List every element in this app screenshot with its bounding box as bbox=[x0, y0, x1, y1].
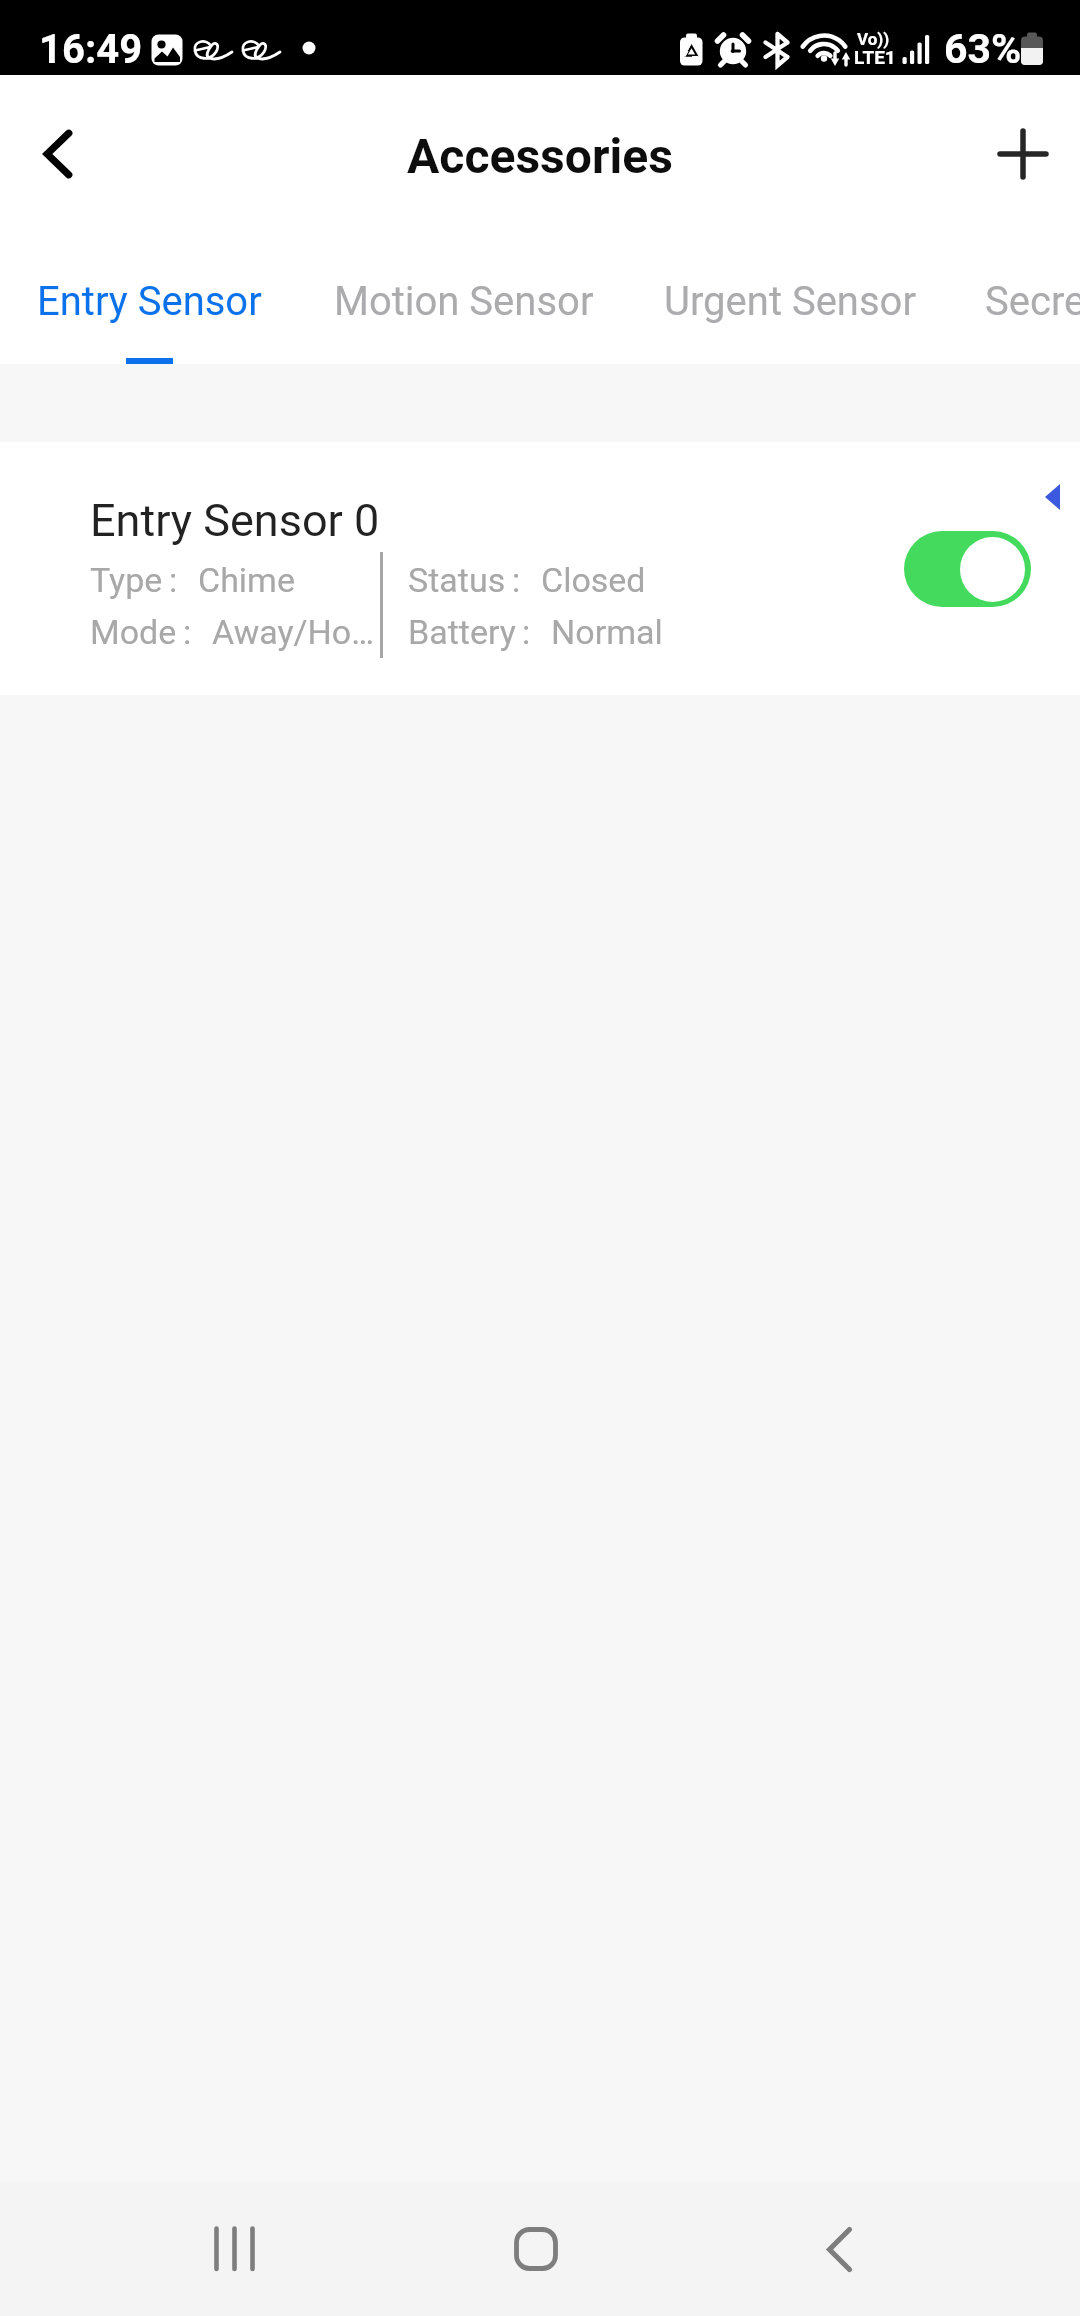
button[interactable]: Secret Sensor bbox=[944, 228, 1080, 364]
staticText: Normal bbox=[551, 612, 663, 652]
staticText: Chime bbox=[198, 560, 295, 600]
staticText: Entry Sensor 0 bbox=[90, 494, 380, 547]
staticText: Mode bbox=[90, 612, 177, 652]
staticText: Closed bbox=[541, 560, 646, 600]
staticText: Urgent Sensor bbox=[664, 278, 916, 325]
staticText: LTE1 bbox=[854, 46, 896, 68]
button[interactable]: Urgent Sensor bbox=[629, 228, 951, 364]
staticText: 16:49 bbox=[39, 26, 143, 73]
button[interactable]: Motion Sensor bbox=[299, 228, 629, 364]
button[interactable]: Toggle Entry Sensor 0 bbox=[904, 531, 1031, 607]
button[interactable]: Back bbox=[0, 77, 116, 230]
staticText: Vo)) bbox=[857, 29, 890, 49]
staticText: : bbox=[512, 560, 521, 600]
staticText: Type bbox=[90, 560, 163, 600]
button[interactable]: Home bbox=[456, 2182, 616, 2316]
staticText: Secret Sensor bbox=[985, 278, 1080, 325]
staticText: Away/Ho… bbox=[212, 612, 374, 652]
staticText: Entry Sensor bbox=[37, 278, 262, 325]
button[interactable]: Back bbox=[759, 2182, 919, 2316]
staticText: Status bbox=[408, 560, 506, 600]
staticText: : bbox=[522, 612, 531, 652]
staticText: Battery bbox=[408, 612, 516, 652]
button[interactable]: Entry Sensor 0 bbox=[0, 442, 1080, 695]
staticText: Accessories bbox=[407, 128, 673, 184]
staticText: : bbox=[169, 560, 178, 600]
staticText: 63% bbox=[944, 25, 1022, 73]
staticText: : bbox=[183, 612, 192, 652]
staticText: Motion Sensor bbox=[334, 278, 594, 325]
button[interactable]: Entry Sensor bbox=[0, 228, 299, 364]
button[interactable]: Add accessory bbox=[966, 77, 1080, 230]
button[interactable]: Recent apps bbox=[154, 2182, 314, 2316]
